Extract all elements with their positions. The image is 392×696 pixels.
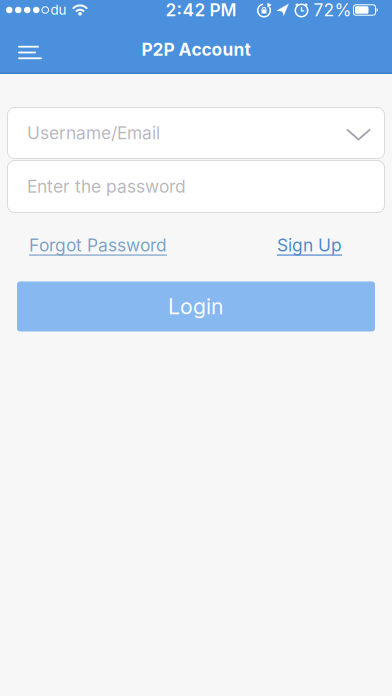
staticText: Username/Email	[27, 123, 160, 143]
staticText: P2P Account	[141, 39, 250, 60]
staticText: Enter the password	[27, 176, 186, 197]
button[interactable]: Login	[17, 281, 375, 331]
button[interactable]: Forgot Password	[29, 235, 167, 255]
button[interactable]: Show saved accounts	[347, 126, 370, 139]
staticText: Login	[168, 294, 224, 319]
staticText: 2:42 PM	[165, 0, 236, 20]
button[interactable]: Sign Up	[277, 235, 342, 255]
staticText: du	[50, 2, 66, 18]
staticText: Sign Up	[277, 235, 342, 255]
staticText: Forgot Password	[29, 235, 167, 255]
staticText: 72%	[313, 0, 351, 20]
button[interactable]: Menu	[0, 33, 52, 61]
